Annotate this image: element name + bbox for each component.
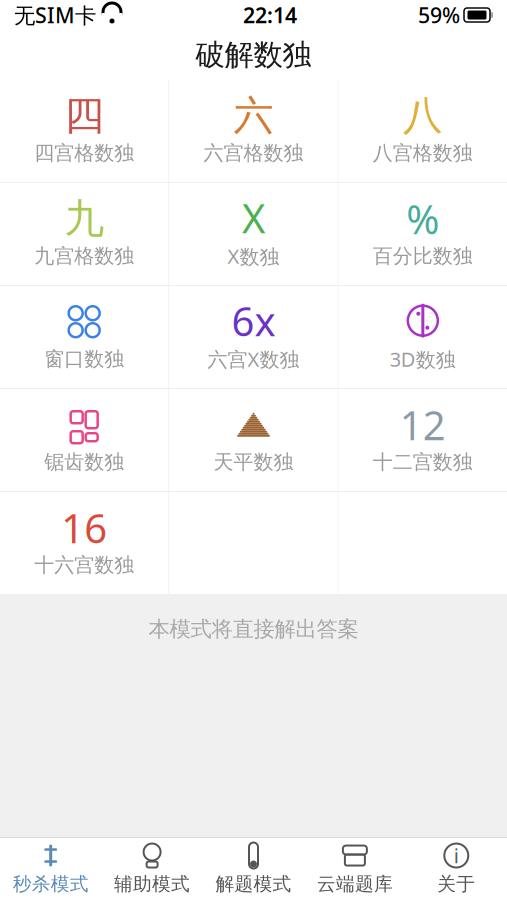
button[interactable]: 窗口数独 — [0, 286, 168, 388]
staticText: 本模式将直接解出答案 — [148, 616, 358, 642]
button[interactable]: 六 — [169, 80, 338, 182]
button[interactable]: 云端题库 — [304, 838, 406, 900]
staticText: 天平数独 — [213, 450, 293, 474]
staticText: 解题模式 — [215, 872, 291, 895]
staticText: i — [454, 842, 459, 869]
staticText: 八宫格数独 — [373, 141, 473, 165]
button[interactable]: i — [406, 838, 507, 900]
staticText: 辅助模式 — [114, 872, 190, 895]
staticText: 22:14 — [243, 1, 297, 29]
button[interactable]: 九 — [0, 183, 168, 285]
staticText: 关于 — [437, 872, 475, 895]
staticText: 12 — [400, 398, 446, 451]
button[interactable]: 秒杀模式 — [0, 838, 101, 900]
button[interactable]: 3D数独 — [339, 286, 507, 388]
button[interactable]: 辅助模式 — [101, 838, 203, 900]
staticText: 窗口数独 — [44, 347, 124, 371]
button[interactable]: 八 — [339, 80, 507, 182]
staticText: 6x — [231, 294, 275, 347]
staticText: 无SIM卡 — [14, 1, 96, 29]
staticText: 十六宫数独 — [34, 553, 134, 577]
button[interactable]: 6x — [169, 286, 338, 388]
staticText: 六 — [233, 91, 273, 140]
staticText: 八 — [403, 91, 443, 140]
staticText: 四宫格数独 — [34, 141, 134, 165]
staticText: 3D数独 — [390, 346, 456, 372]
staticText: X — [242, 191, 265, 244]
staticText: 百分比数独 — [373, 244, 473, 268]
staticText: 破解数独 — [195, 37, 311, 73]
staticText: 云端题库 — [317, 872, 393, 895]
staticText: % — [406, 192, 439, 245]
staticText: 锯齿数独 — [44, 450, 124, 474]
button[interactable]: 解题模式 — [203, 838, 304, 900]
staticText: 六宫格数独 — [203, 141, 303, 165]
staticText: 六宫X数独 — [207, 346, 299, 372]
staticText: 59% — [418, 1, 460, 29]
staticText: 十二宫数独 — [373, 450, 473, 474]
staticText: 16 — [61, 501, 107, 554]
button[interactable]: % — [339, 183, 507, 285]
button[interactable]: X — [169, 183, 338, 285]
staticText: X数独 — [227, 243, 279, 269]
staticText: 秒杀模式 — [13, 872, 89, 895]
staticText: 四 — [64, 91, 104, 140]
button[interactable]: 12 — [339, 389, 507, 491]
button[interactable]: 四 — [0, 80, 168, 182]
staticText: 九 — [64, 194, 104, 243]
button[interactable]: 16 — [0, 492, 168, 594]
button[interactable]: 天平数独 — [169, 389, 338, 491]
button[interactable]: 锯齿数独 — [0, 389, 168, 491]
staticText: 九宫格数独 — [34, 244, 134, 268]
